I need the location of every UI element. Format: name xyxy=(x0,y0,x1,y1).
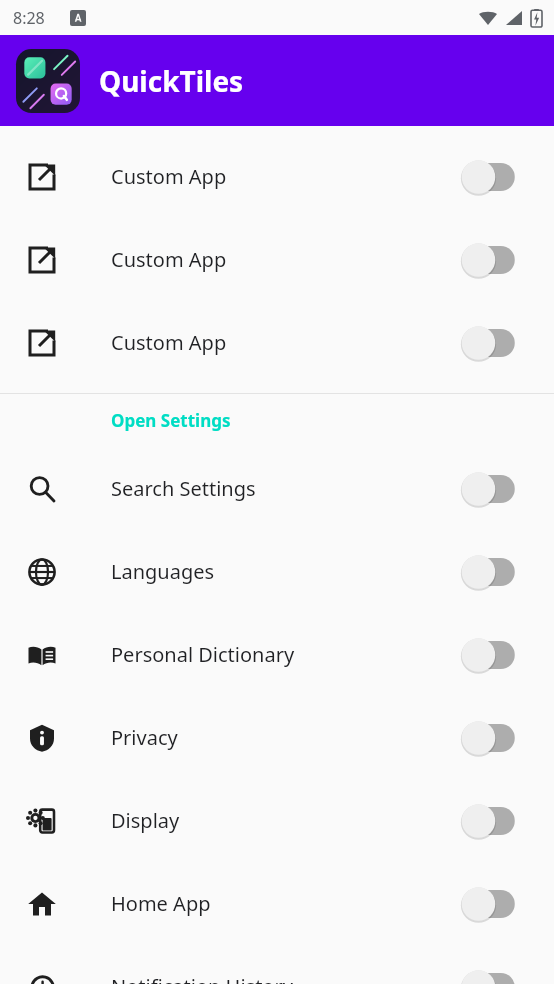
staticText: Notification History xyxy=(111,973,460,984)
button[interactable]: Custom App xyxy=(0,218,554,301)
button[interactable]: Toggle xyxy=(460,323,526,363)
button[interactable]: Personal Dictionary xyxy=(0,613,554,696)
staticText: Personal Dictionary xyxy=(111,641,460,668)
button[interactable]: Search Settings xyxy=(0,447,554,530)
staticText: Custom App xyxy=(111,329,460,356)
button[interactable]: Privacy xyxy=(0,696,554,779)
button[interactable]: Notification History xyxy=(0,945,554,984)
button[interactable]: Toggle xyxy=(460,801,526,841)
button[interactable]: Languages xyxy=(0,530,554,613)
button[interactable]: Home App xyxy=(0,862,554,945)
staticText: Custom App xyxy=(111,246,460,273)
staticText: Privacy xyxy=(111,724,460,751)
button[interactable]: Toggle xyxy=(460,157,526,197)
staticText: Display xyxy=(111,807,460,834)
staticText: Open Settings xyxy=(111,409,231,432)
button[interactable]: Toggle xyxy=(460,884,526,924)
button[interactable]: Custom App xyxy=(0,301,554,384)
button[interactable]: Display xyxy=(0,779,554,862)
button[interactable]: Custom App xyxy=(0,135,554,218)
staticText: Custom App xyxy=(111,163,460,190)
staticText: Home App xyxy=(111,890,460,917)
button[interactable]: Toggle xyxy=(460,552,526,592)
staticText: 8:28 xyxy=(13,7,45,29)
button[interactable]: Toggle xyxy=(460,718,526,758)
staticText: Search Settings xyxy=(111,475,460,502)
staticText: Languages xyxy=(111,558,460,585)
button[interactable]: Toggle xyxy=(460,240,526,280)
button[interactable]: Toggle xyxy=(460,967,526,984)
button[interactable]: Toggle xyxy=(460,635,526,675)
staticText: QuickTiles xyxy=(99,62,244,100)
button[interactable]: Toggle xyxy=(460,469,526,509)
